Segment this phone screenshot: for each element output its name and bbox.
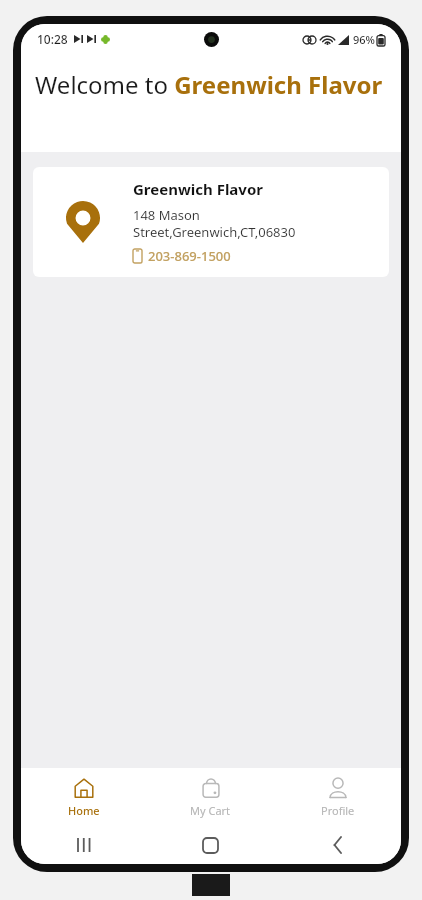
staticText: My Cart	[190, 803, 231, 818]
staticText: 203-869-1500	[148, 247, 231, 265]
staticText: 10:28	[37, 31, 68, 47]
button[interactable]: Home	[147, 826, 274, 864]
button[interactable]: Recent apps	[21, 826, 147, 864]
button[interactable]: My Cart	[147, 768, 274, 826]
button[interactable]: Profile	[274, 768, 401, 826]
staticText: Profile	[321, 803, 355, 818]
button[interactable]: Home	[21, 768, 147, 826]
button[interactable]: Back	[274, 826, 401, 864]
button[interactable]: Greenwich Flavor	[33, 167, 389, 277]
staticText: Welcome to Greenwich Flavor	[35, 68, 383, 101]
staticText: Home	[68, 803, 100, 818]
staticText: Greenwich Flavor	[133, 179, 263, 199]
staticText: 148 Mason Street,Greenwich,CT,06830	[133, 206, 296, 241]
staticText: 96%	[353, 32, 375, 47]
